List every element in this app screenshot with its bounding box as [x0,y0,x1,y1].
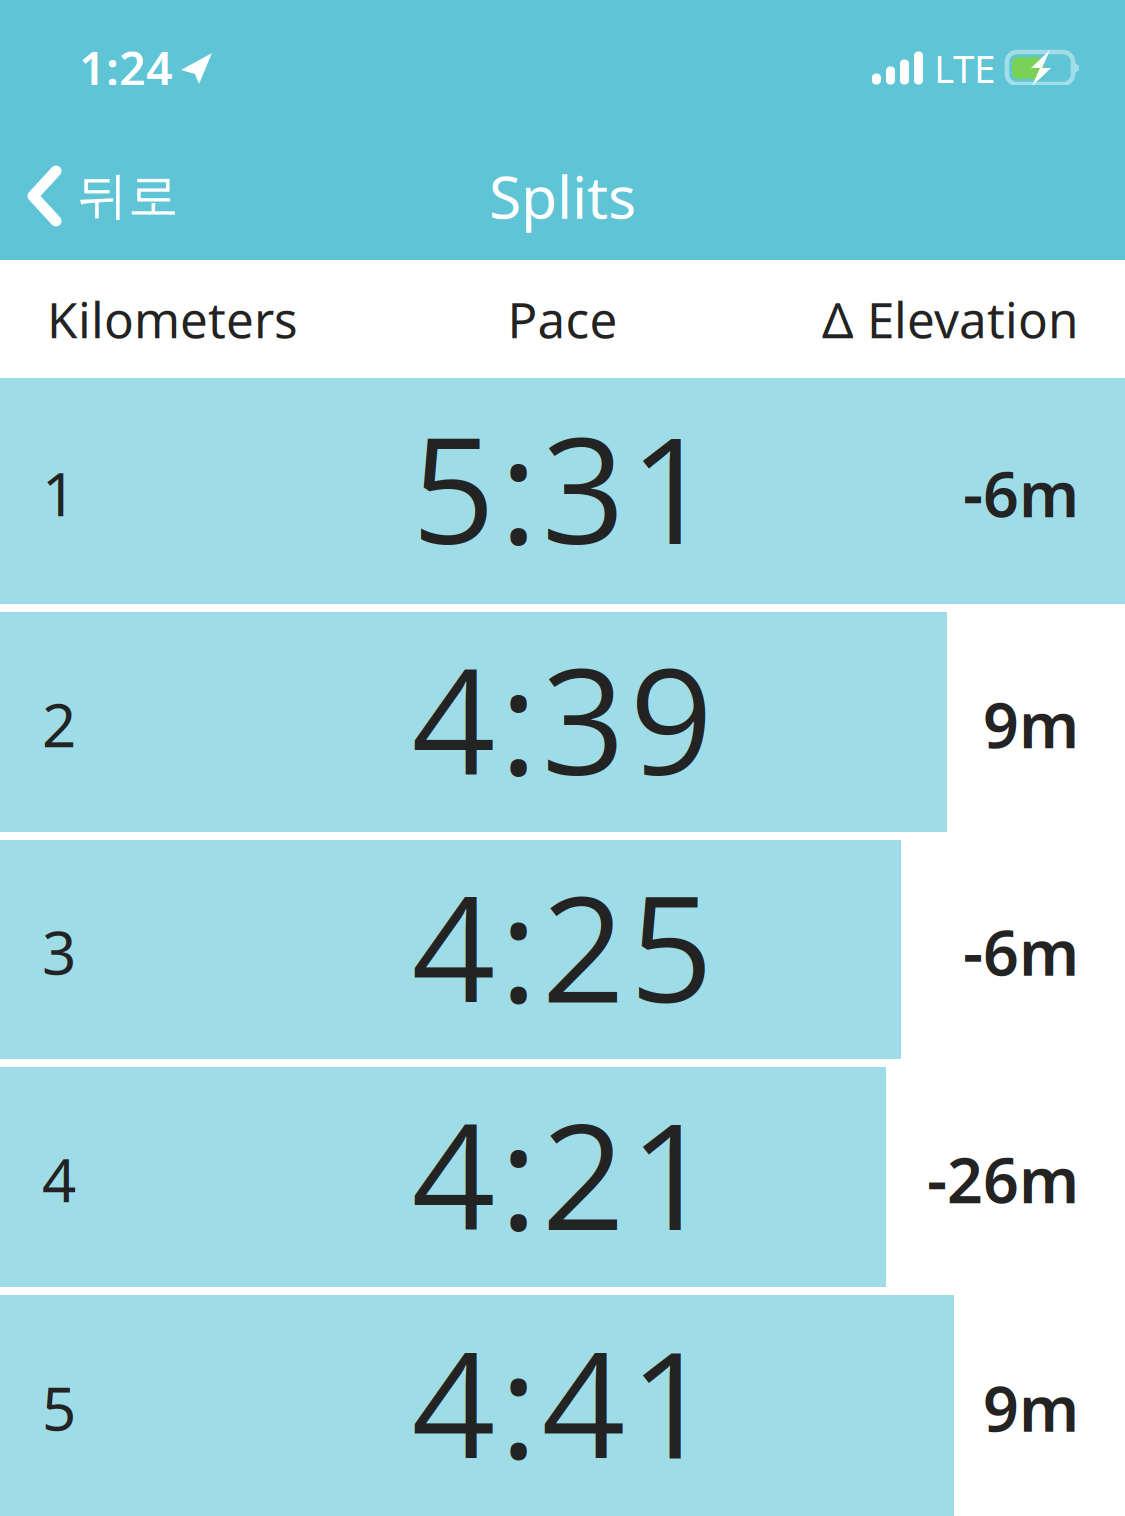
staticText: -6m [963,910,1079,993]
button[interactable]: 4:39 [0,612,1125,832]
staticText: 4:41 [411,1302,713,1501]
staticText: Kilometers [47,286,298,352]
staticText: 5:31 [411,387,713,587]
button[interactable]: 5:31 [0,378,1125,604]
staticText: 9m [983,1366,1079,1449]
button[interactable]: 4:25 [0,840,1125,1059]
staticText: 4 [42,1139,76,1219]
staticText: 4:21 [411,1073,713,1273]
button[interactable]: 뒤로 [0,139,260,253]
button[interactable]: 4:21 [0,1067,1125,1287]
staticText: 1 [42,453,76,533]
staticText: 4:39 [411,618,713,818]
staticText: -26m [927,1137,1079,1221]
staticText: Pace [507,286,617,352]
staticText: 뒤로 [77,165,179,227]
staticText: 3 [42,912,76,991]
staticText: -6m [963,451,1079,535]
staticText: 2 [42,684,76,764]
staticText: LTE [934,42,995,94]
button[interactable]: 4:41 [0,1295,1125,1516]
staticText: 4:25 [411,846,713,1045]
staticText: 9m [983,682,1079,766]
staticText: 1:24 [79,37,173,99]
staticText: Δ Elevation [822,286,1078,352]
staticText: Splits [489,157,636,235]
staticText: 5 [42,1368,76,1447]
